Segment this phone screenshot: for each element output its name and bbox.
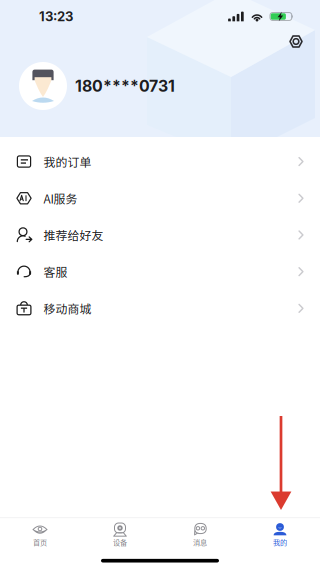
button[interactable]: AI服务 <box>0 180 320 217</box>
button[interactable]: 我的订单 <box>0 143 320 180</box>
staticText: 我的 <box>273 537 287 547</box>
staticText: 我的订单 <box>44 153 92 170</box>
staticText: 移动商城 <box>44 300 92 317</box>
staticText: 设备 <box>113 537 127 547</box>
staticText: 13:23 <box>39 9 73 24</box>
staticText: 首页 <box>33 537 47 547</box>
staticText: AI服务 <box>44 190 78 207</box>
button[interactable]: 客服 <box>0 253 320 290</box>
button[interactable]: 首页 <box>0 518 80 551</box>
button[interactable]: 消息 <box>160 518 240 551</box>
button[interactable]: 推荐给好友 <box>0 217 320 253</box>
button[interactable]: Settings <box>283 33 309 50</box>
staticText: 客服 <box>44 263 68 280</box>
staticText: 消息 <box>193 537 207 547</box>
button[interactable]: 移动商城 <box>0 290 320 327</box>
staticText: 180****0731 <box>75 76 175 96</box>
staticText: 推荐给好友 <box>44 226 104 244</box>
button[interactable]: 我的 <box>240 518 320 551</box>
button[interactable]: 设备 <box>80 518 160 551</box>
